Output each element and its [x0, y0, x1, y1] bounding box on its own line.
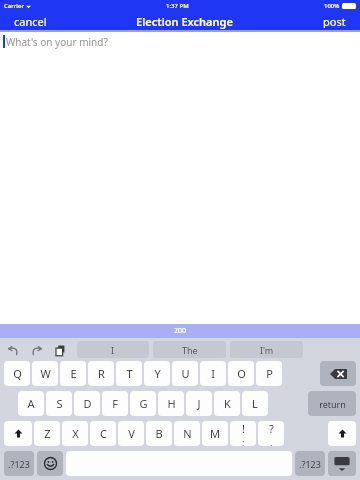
button[interactable]: Redo	[27, 340, 47, 360]
button[interactable]: V	[118, 421, 144, 446]
button[interactable]: T	[116, 361, 142, 386]
button[interactable]: P	[256, 361, 282, 386]
button[interactable]: What's on your mind?	[0, 32, 360, 324]
staticText: E	[70, 366, 77, 381]
button[interactable]: X	[62, 421, 88, 446]
button[interactable]: C	[90, 421, 116, 446]
staticText: F	[112, 396, 118, 411]
button[interactable]: I	[200, 361, 226, 386]
staticText: 200	[174, 326, 187, 336]
button[interactable]: Paste	[51, 340, 71, 360]
staticText: G	[139, 396, 148, 411]
button[interactable]: return	[308, 391, 356, 416]
button[interactable]: L	[242, 391, 268, 416]
staticText: R	[98, 366, 105, 381]
staticText: What's on your mind?	[6, 35, 108, 49]
button[interactable]: ?	[258, 421, 284, 446]
button[interactable]: D	[74, 391, 100, 416]
staticText: D	[83, 396, 92, 411]
staticText: V	[128, 426, 135, 441]
button[interactable]: Y	[144, 361, 170, 386]
staticText: B	[155, 426, 163, 441]
staticText: ;	[242, 436, 245, 446]
staticText: ?	[269, 421, 274, 436]
staticText: O	[237, 366, 246, 381]
staticText: P	[266, 366, 273, 381]
button[interactable]: I	[77, 341, 149, 358]
staticText: I	[211, 366, 215, 381]
button[interactable]: G	[130, 391, 156, 416]
button[interactable]: Backspace	[320, 361, 356, 386]
staticText: .?123	[8, 458, 30, 470]
staticText: cancel	[14, 14, 47, 28]
button[interactable]: Q	[4, 361, 30, 386]
button[interactable]: O	[228, 361, 254, 386]
staticText: Z	[44, 426, 51, 441]
staticText: K	[224, 396, 231, 411]
button[interactable]: U	[172, 361, 198, 386]
staticText: W	[40, 366, 51, 381]
button[interactable]: The	[153, 341, 226, 358]
staticText: Election Exchange	[136, 14, 233, 29]
button[interactable]: .?123	[4, 451, 34, 476]
button[interactable]: cancel	[8, 12, 53, 30]
button[interactable]: S	[46, 391, 72, 416]
button[interactable]: H	[158, 391, 184, 416]
staticText: !	[242, 421, 245, 436]
button[interactable]: Shift	[4, 421, 32, 446]
button[interactable]: Shift	[328, 421, 356, 446]
staticText: return	[319, 398, 346, 410]
button[interactable]: !	[230, 421, 256, 446]
staticText: Carrier	[4, 2, 24, 10]
staticText: C	[100, 426, 107, 441]
button[interactable]: M	[202, 421, 228, 446]
staticText: Y	[154, 366, 161, 381]
button[interactable]: R	[88, 361, 114, 386]
button[interactable]: E	[60, 361, 86, 386]
staticText: N	[183, 426, 192, 441]
staticText: U	[181, 366, 190, 381]
staticText: .	[270, 436, 273, 446]
button[interactable]: N	[174, 421, 200, 446]
staticText: A	[27, 396, 35, 411]
staticText: I'm	[260, 344, 274, 356]
staticText: T	[126, 366, 133, 381]
button[interactable]: Z	[34, 421, 60, 446]
staticText: 100%	[324, 2, 340, 10]
staticText: .?123	[299, 458, 321, 470]
button[interactable]: .?123	[295, 451, 325, 476]
staticText: H	[167, 396, 176, 411]
staticText: M	[210, 426, 220, 441]
button[interactable]: K	[214, 391, 240, 416]
button[interactable]: Undo	[3, 340, 23, 360]
staticText: X	[72, 426, 79, 441]
staticText: S	[56, 396, 63, 411]
staticText: J	[197, 396, 201, 411]
staticText: post	[323, 14, 346, 28]
button[interactable]: Emoji	[37, 451, 63, 476]
staticText: The	[182, 344, 198, 356]
button[interactable]: F	[102, 391, 128, 416]
button[interactable]: J	[186, 391, 212, 416]
button[interactable]: A	[18, 391, 44, 416]
button[interactable]: B	[146, 421, 172, 446]
button[interactable]: I'm	[230, 341, 303, 358]
staticText: 1:37 PM	[166, 2, 189, 10]
staticText: Q	[13, 366, 22, 381]
staticText: L	[252, 396, 258, 411]
staticText: I	[111, 344, 115, 356]
button[interactable]: Hide keyboard	[328, 451, 356, 476]
button[interactable]: post	[317, 12, 352, 30]
button[interactable]: W	[32, 361, 58, 386]
